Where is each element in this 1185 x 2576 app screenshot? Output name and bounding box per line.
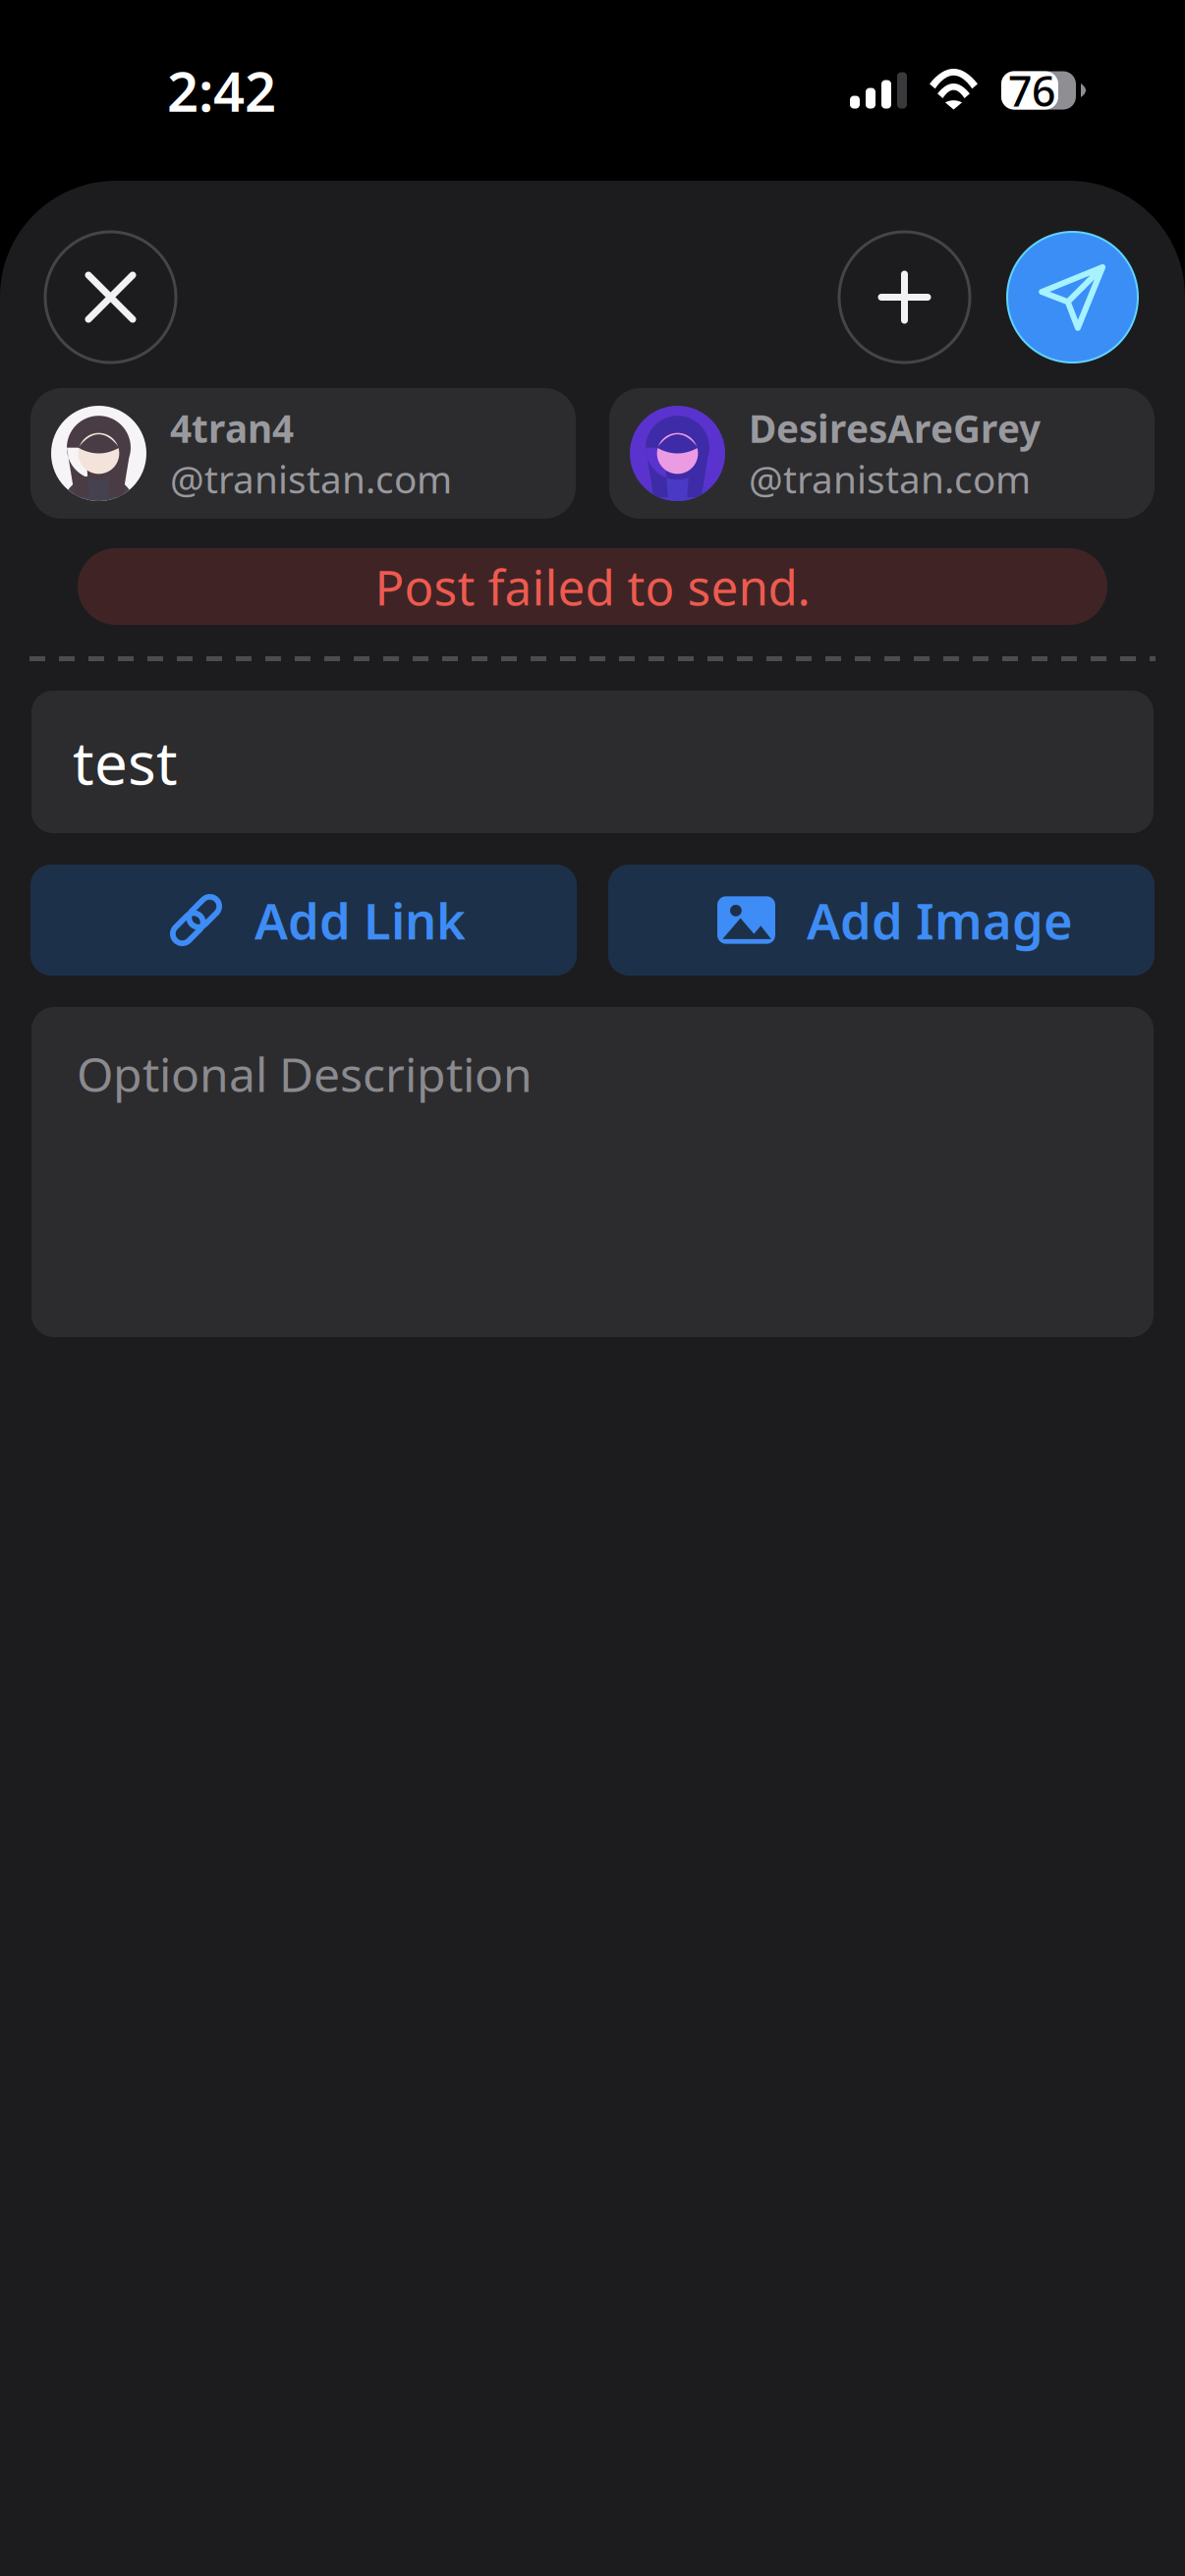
staticText: @tranistan.com <box>749 453 1031 504</box>
button[interactable]: Send <box>1007 232 1138 363</box>
staticText: Post failed to send. <box>375 554 810 619</box>
staticText: test <box>73 723 178 801</box>
button[interactable]: Add Image <box>608 865 1155 976</box>
staticText: 2:42 <box>167 54 276 127</box>
button[interactable]: Close <box>45 232 176 363</box>
button[interactable]: 4tran4 <box>30 388 576 519</box>
button[interactable]: Post failed to send. <box>78 548 1107 625</box>
button[interactable]: Add another post <box>839 232 970 363</box>
staticText: Add Link <box>254 887 466 953</box>
staticText: @tranistan.com <box>170 453 452 504</box>
button[interactable]: test <box>31 691 1154 833</box>
staticText: Optional Description <box>77 1042 533 1105</box>
staticText: Add Image <box>807 887 1073 953</box>
button[interactable]: Optional Description <box>31 1007 1154 1337</box>
button[interactable]: DesiresAreGrey <box>609 388 1155 519</box>
staticText: 76 <box>1008 63 1055 118</box>
button[interactable]: Add Link <box>30 865 577 976</box>
staticText: DesiresAreGrey <box>749 403 1041 453</box>
staticText: 4tran4 <box>170 403 294 453</box>
